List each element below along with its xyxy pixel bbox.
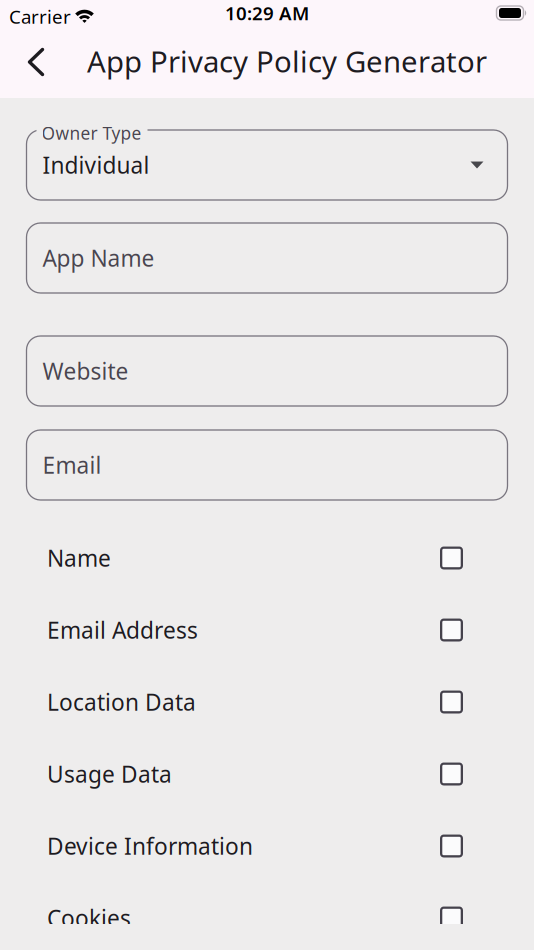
staticText: Usage Data: [47, 759, 172, 789]
button[interactable]: Name: [0, 522, 534, 594]
button[interactable]: Individual: [26, 130, 507, 200]
button[interactable]: Location Data: [0, 666, 534, 738]
staticText: Name: [47, 543, 111, 573]
staticText: 10:29 AM: [225, 1, 309, 25]
button[interactable]: Cookies: [0, 882, 534, 950]
staticText: Cookies: [47, 903, 131, 933]
button[interactable]: Device Information: [0, 810, 534, 882]
staticText: Individual: [42, 150, 149, 180]
staticText: Location Data: [47, 687, 196, 717]
staticText: Email: [42, 450, 101, 480]
button[interactable]: App Name: [26, 223, 507, 293]
button[interactable]: Email Address: [0, 594, 534, 666]
button[interactable]: Back: [12, 38, 60, 86]
staticText: Carrier: [9, 4, 71, 29]
staticText: Email Address: [47, 615, 198, 645]
button[interactable]: Website: [26, 336, 507, 406]
staticText: Website: [42, 356, 128, 386]
button[interactable]: Email: [26, 430, 507, 500]
button[interactable]: Usage Data: [0, 738, 534, 810]
staticText: App Name: [42, 243, 154, 273]
staticText: Owner Type: [41, 121, 141, 144]
staticText: App Privacy Policy Generator: [87, 41, 487, 80]
staticText: Device Information: [47, 831, 253, 861]
